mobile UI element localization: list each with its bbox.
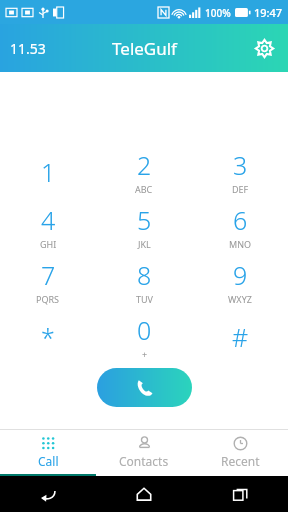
button[interactable]: Recent: [192, 430, 288, 474]
button[interactable]: Back: [0, 476, 96, 512]
button[interactable]: Call: [97, 368, 192, 407]
staticText: TUV: [136, 293, 153, 305]
staticText: 100%: [205, 6, 231, 20]
staticText: JKL: [138, 238, 151, 250]
staticText: 6: [233, 203, 248, 237]
staticText: 1: [41, 155, 56, 189]
button[interactable]: 9: [192, 254, 288, 309]
staticText: Contacts: [119, 453, 169, 469]
staticText: ABC: [135, 183, 153, 195]
staticText: 0: [137, 313, 152, 347]
button[interactable]: #: [192, 309, 288, 364]
button[interactable]: Home: [96, 476, 192, 512]
staticText: 11.53: [10, 39, 46, 58]
button[interactable]: Contacts: [96, 430, 192, 474]
button[interactable]: Settings: [248, 32, 280, 64]
staticText: MNO: [229, 238, 252, 250]
staticText: 2: [137, 148, 152, 182]
staticText: 4: [41, 203, 56, 237]
button[interactable]: 3: [192, 144, 288, 199]
button[interactable]: 5: [96, 199, 192, 254]
button[interactable]: 6: [192, 199, 288, 254]
staticText: TeleGulf: [112, 37, 177, 60]
staticText: Recent: [221, 453, 260, 469]
button[interactable]: 1: [0, 144, 96, 199]
staticText: 7: [41, 258, 56, 292]
staticText: #: [232, 320, 249, 354]
button[interactable]: Recents: [192, 476, 288, 512]
staticText: Call: [38, 453, 59, 469]
staticText: 9: [233, 258, 248, 292]
staticText: 8: [137, 258, 152, 292]
staticText: 3: [233, 148, 248, 182]
staticText: WXYZ: [228, 293, 252, 305]
staticText: 5: [137, 203, 152, 237]
staticText: +: [142, 348, 148, 360]
staticText: GHI: [40, 238, 57, 250]
button[interactable]: 8: [96, 254, 192, 309]
button[interactable]: 4: [0, 199, 96, 254]
staticText: DEF: [232, 183, 249, 195]
button[interactable]: 2: [96, 144, 192, 199]
staticText: PQRS: [36, 293, 60, 305]
button[interactable]: Call: [0, 430, 96, 474]
staticText: 19:47: [254, 5, 283, 20]
staticText: *: [41, 320, 55, 354]
button[interactable]: 7: [0, 254, 96, 309]
button[interactable]: *: [0, 309, 96, 364]
button[interactable]: 0: [96, 309, 192, 364]
